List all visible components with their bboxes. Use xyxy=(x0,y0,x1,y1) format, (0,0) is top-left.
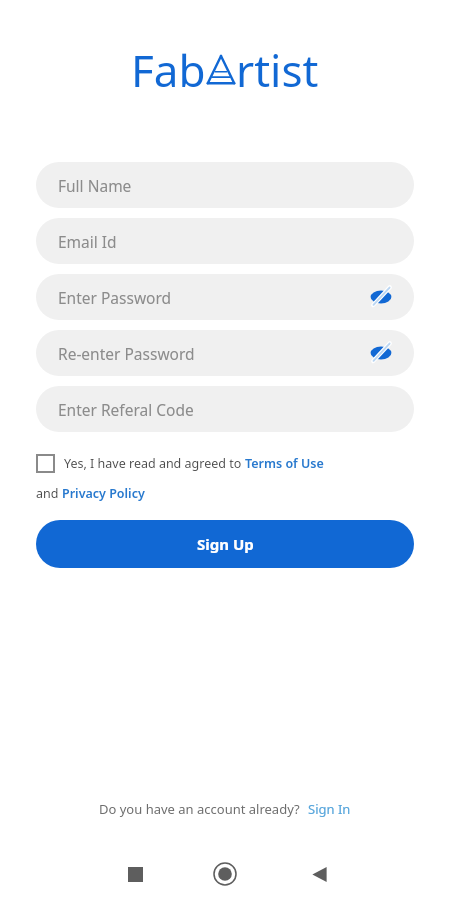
staticText: Enter Password xyxy=(58,287,366,308)
button[interactable]: Agree to terms checkbox xyxy=(36,454,55,473)
button[interactable]: Sign Up xyxy=(36,520,414,568)
button[interactable]: Back xyxy=(302,857,336,891)
staticText: Email Id xyxy=(58,231,396,252)
staticText: Re-enter Password xyxy=(58,343,366,364)
staticText: Full Name xyxy=(58,175,396,196)
staticText: Fab xyxy=(131,40,206,100)
staticText: rtist xyxy=(236,40,319,100)
staticText: Terms of Use xyxy=(245,455,324,472)
button[interactable]: Recent apps xyxy=(118,857,152,891)
staticText: Sign Up xyxy=(197,534,254,554)
button[interactable]: Re-enter Password xyxy=(36,330,414,376)
staticText: Yes, I have read and agreed to xyxy=(64,455,245,472)
staticText: Privacy Policy xyxy=(62,485,145,502)
button[interactable]: Enter Referal Code xyxy=(36,386,414,432)
staticText: Enter Referal Code xyxy=(58,399,396,420)
button[interactable]: Enter Password xyxy=(36,274,414,320)
button[interactable]: Full Name xyxy=(36,162,414,208)
staticText: Do you have an account already? xyxy=(99,800,300,818)
button[interactable]: Toggle password visibility xyxy=(366,338,396,368)
button[interactable]: Home xyxy=(207,856,243,892)
button[interactable]: Sign In xyxy=(308,800,351,818)
button[interactable]: Terms of Use xyxy=(245,455,324,472)
staticText: Sign In xyxy=(308,800,351,818)
button[interactable]: Toggle password visibility xyxy=(366,282,396,312)
staticText: and xyxy=(36,485,62,502)
button[interactable]: Email Id xyxy=(36,218,414,264)
button[interactable]: Privacy Policy xyxy=(62,485,145,502)
